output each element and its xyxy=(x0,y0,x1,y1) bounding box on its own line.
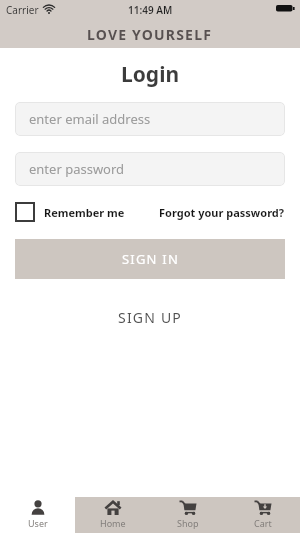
staticText: Forgot your password? xyxy=(159,205,285,220)
button[interactable]: Remember me xyxy=(44,202,125,222)
button[interactable]: User xyxy=(0,497,75,533)
button[interactable] xyxy=(15,202,35,222)
staticText: Home xyxy=(100,517,126,529)
button[interactable]: enter password xyxy=(15,152,285,186)
staticText: enter email address xyxy=(29,110,151,128)
staticText: Cart xyxy=(254,517,272,529)
staticText: SIGN UP xyxy=(118,308,183,327)
button[interactable]: Forgot your password? xyxy=(159,205,285,220)
staticText: 11:49 AM xyxy=(128,3,173,17)
button[interactable]: SIGN IN xyxy=(15,239,285,279)
button[interactable]: SIGN UP xyxy=(118,308,183,327)
button[interactable]: enter email address xyxy=(15,102,285,136)
staticText: Carrier xyxy=(6,3,39,17)
button[interactable]: Home xyxy=(75,497,150,533)
staticText: Shop xyxy=(177,517,199,529)
staticText: LOVE YOURSELF xyxy=(87,25,213,44)
button[interactable]: Cart xyxy=(225,497,300,533)
staticText: User xyxy=(28,517,48,529)
button[interactable]: Shop xyxy=(150,497,225,533)
staticText: Remember me xyxy=(44,205,125,220)
staticText: SIGN IN xyxy=(122,250,179,268)
staticText: enter password xyxy=(29,160,125,178)
staticText: Login xyxy=(121,60,180,89)
